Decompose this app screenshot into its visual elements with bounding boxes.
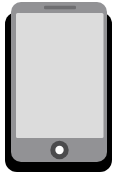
button[interactable]: Smartphone device illustration bbox=[0, 0, 119, 178]
